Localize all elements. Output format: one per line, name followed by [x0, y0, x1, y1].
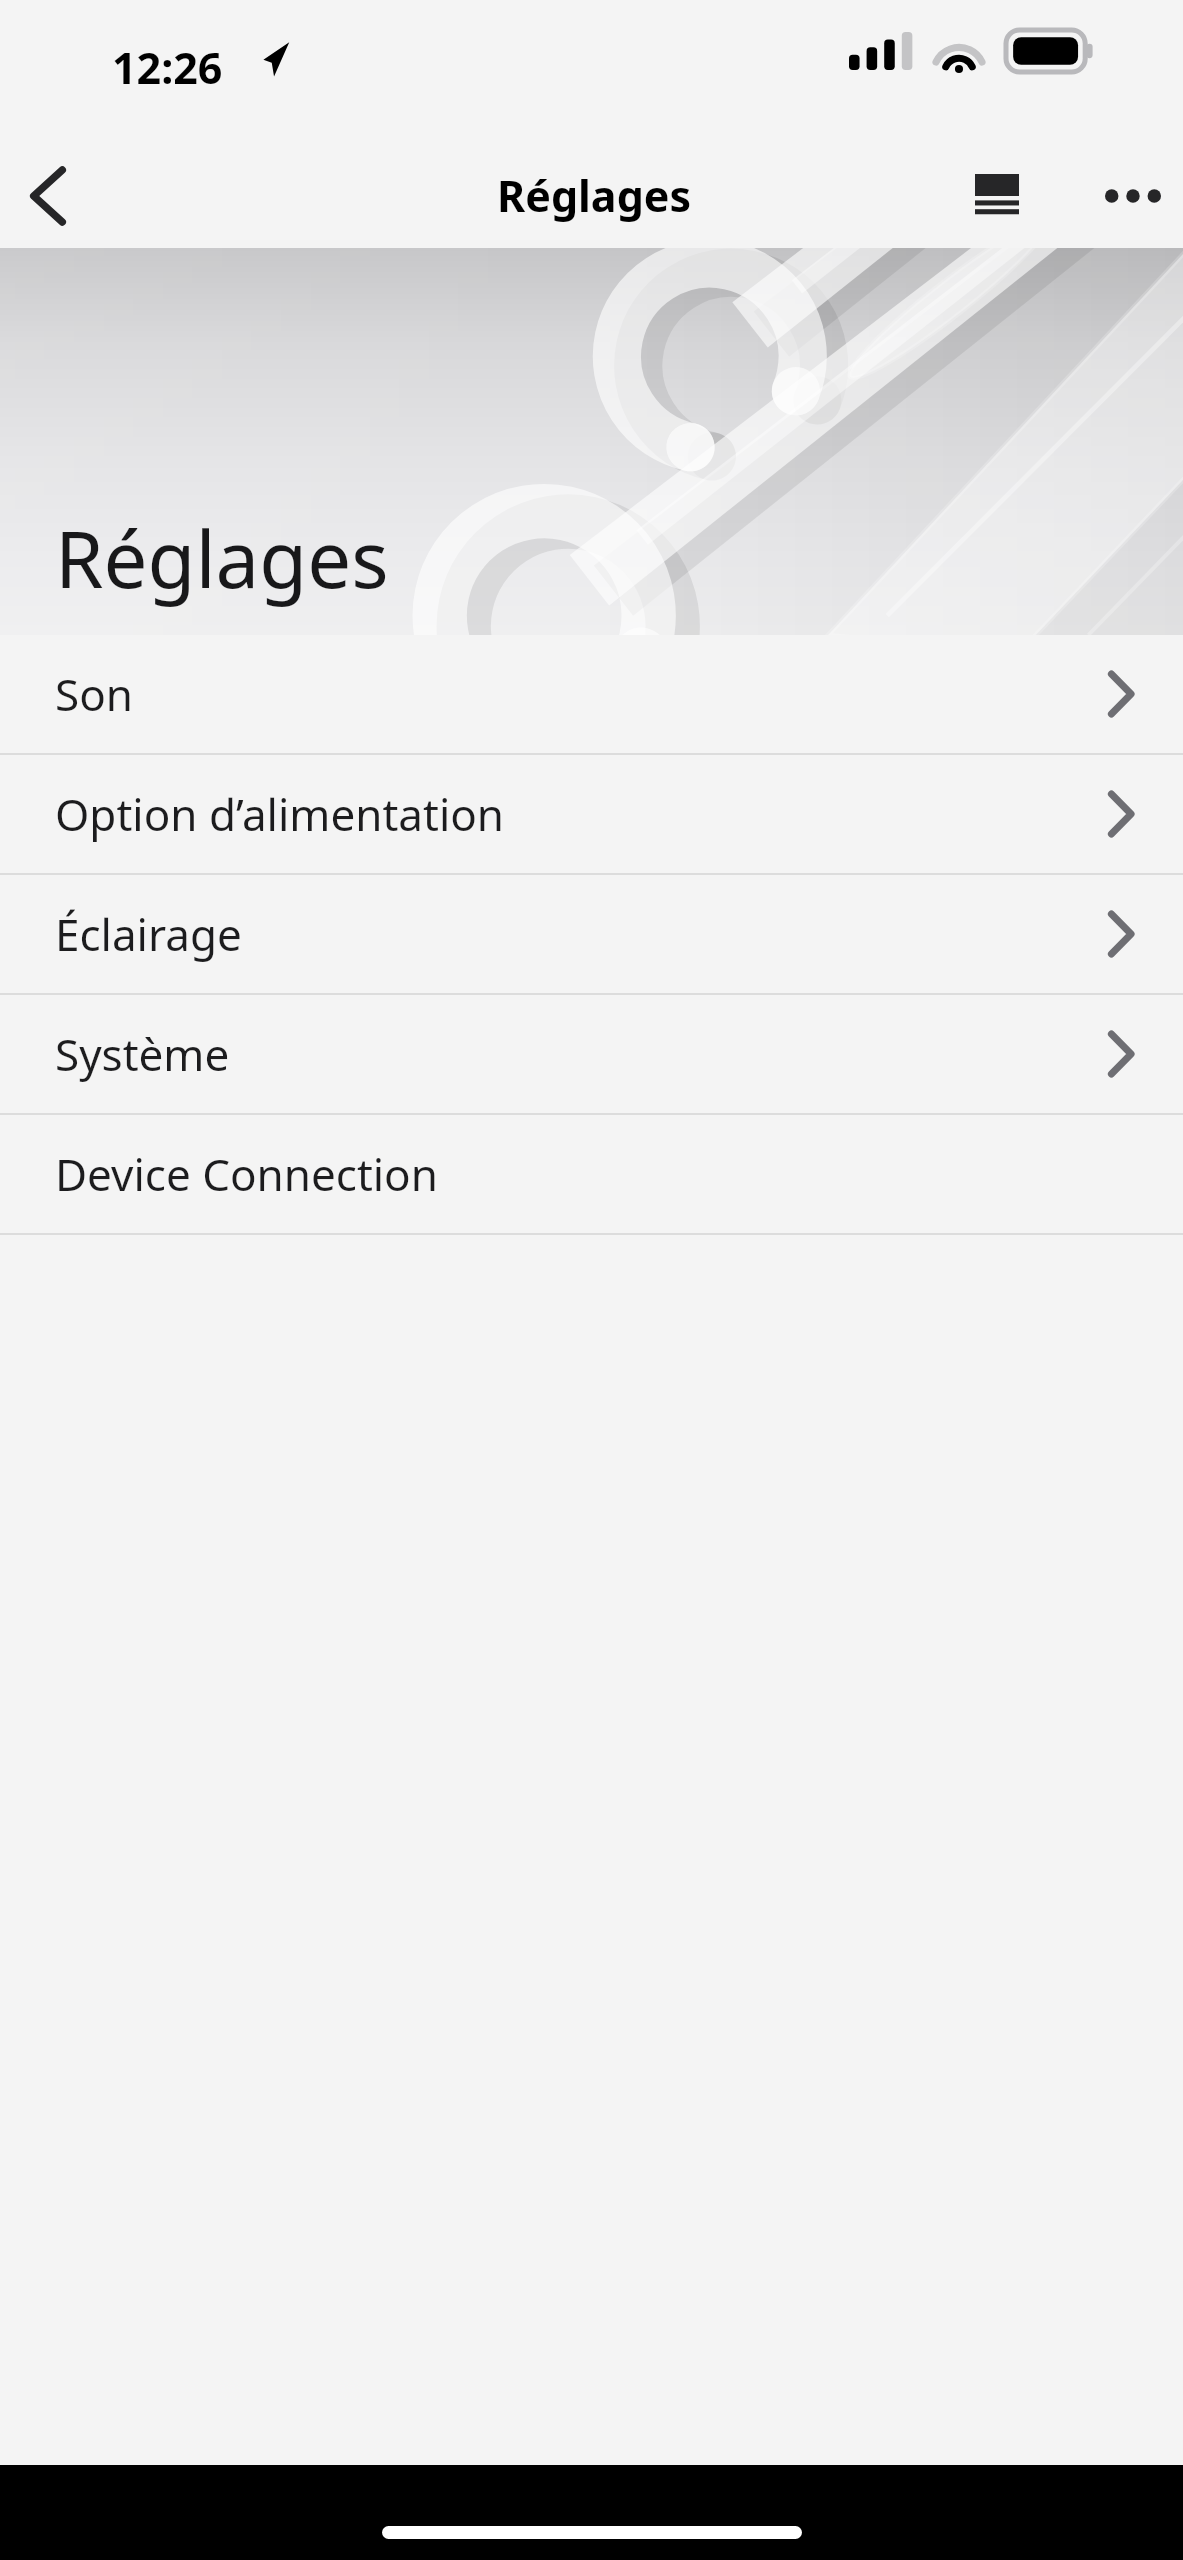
staticText: Réglages [55, 505, 389, 611]
staticText: Système [55, 1024, 1109, 1084]
button[interactable]: Système [0, 995, 1183, 1113]
button[interactable]: View list [949, 143, 1045, 248]
button[interactable]: Option d’alimentation [0, 755, 1183, 873]
staticText: Son [55, 664, 1109, 724]
staticText: Réglages [497, 166, 692, 225]
button[interactable]: Son [0, 635, 1183, 753]
button[interactable]: Device Connection [0, 1115, 1183, 1233]
staticText: Option d’alimentation [55, 784, 1109, 844]
staticText: 12:26 [112, 38, 223, 97]
staticText: Éclairage [55, 904, 1109, 964]
staticText: Device Connection [55, 1144, 1133, 1204]
button[interactable]: Éclairage [0, 875, 1183, 993]
button[interactable]: Back [0, 143, 96, 248]
button[interactable]: More options [1083, 143, 1183, 248]
